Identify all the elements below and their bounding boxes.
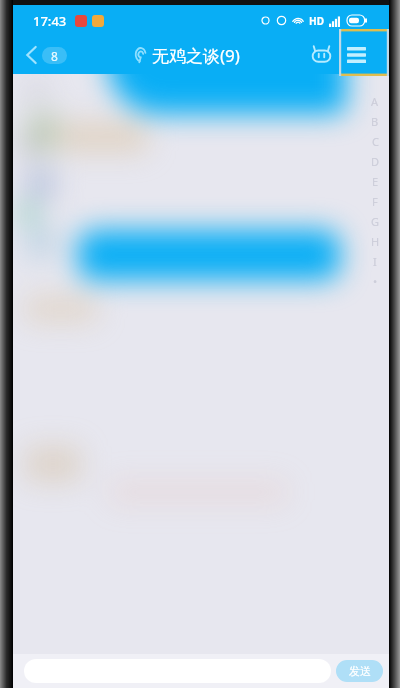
staticText: G [371, 214, 380, 229]
button[interactable]: A [368, 91, 382, 111]
button[interactable]: I [368, 251, 382, 271]
button[interactable]: Group profile [305, 39, 337, 71]
staticText: F [372, 194, 378, 209]
button[interactable]: Back [26, 41, 67, 69]
button[interactable]: C [368, 131, 382, 151]
button[interactable]: 发送 [336, 660, 383, 682]
staticText: I [373, 254, 377, 269]
button[interactable]: H [368, 231, 382, 251]
staticText: E [372, 174, 379, 189]
staticText: • [373, 274, 378, 289]
staticText: H [371, 234, 380, 249]
button[interactable]: B [368, 111, 382, 131]
staticText: A [371, 94, 379, 109]
staticText: 无鸡之谈(9) [152, 44, 240, 67]
staticText: 17:43 [33, 12, 67, 30]
button[interactable]: Menu [340, 39, 372, 71]
button[interactable]: G [368, 211, 382, 231]
button[interactable]: D [368, 151, 382, 171]
staticText: D [371, 154, 380, 169]
button[interactable]: E [368, 171, 382, 191]
staticText: 8 [51, 48, 58, 64]
button[interactable]: F [368, 191, 382, 211]
staticText: HD [309, 14, 324, 28]
staticText: B [371, 114, 379, 129]
staticText: C [372, 134, 379, 149]
staticText: 发送 [349, 664, 371, 678]
